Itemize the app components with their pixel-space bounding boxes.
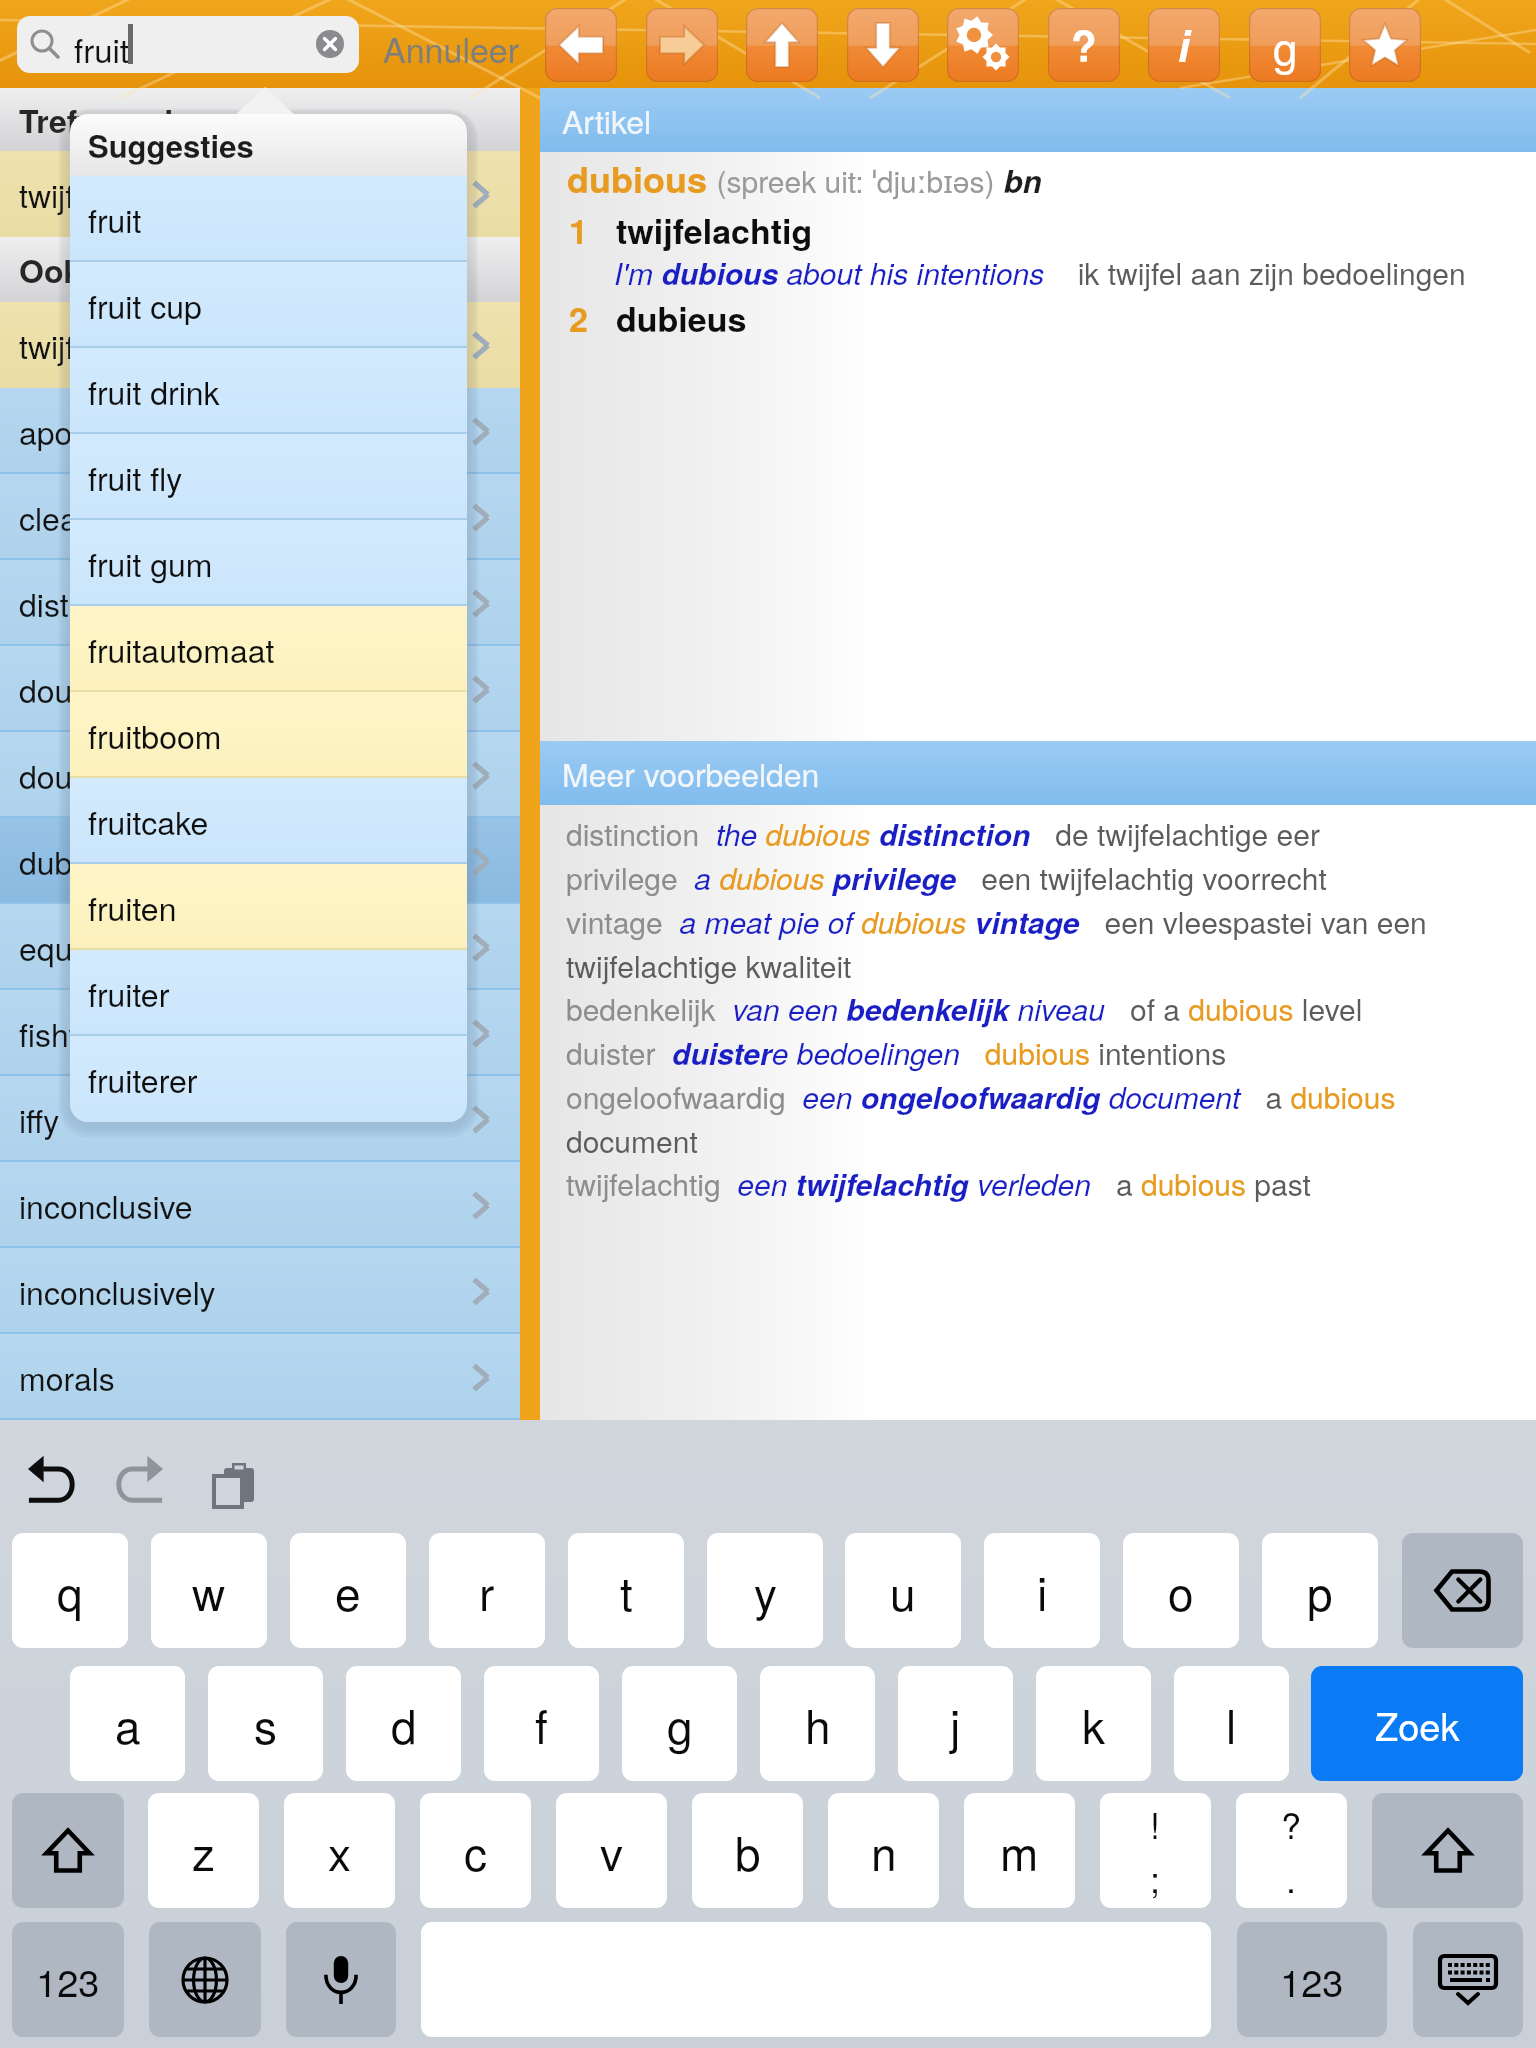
staticText: b — [735, 1818, 761, 1884]
button[interactable]: x — [284, 1793, 395, 1908]
button[interactable]: z — [148, 1793, 259, 1908]
button[interactable]: Backspace — [1402, 1533, 1523, 1648]
staticText: i — [1178, 15, 1190, 75]
button[interactable]: y — [707, 1533, 823, 1648]
button[interactable]: Hide keyboard — [1413, 1922, 1523, 2037]
button[interactable]: morals — [0, 1334, 520, 1420]
button[interactable]: back — [545, 8, 617, 82]
button[interactable]: o — [1123, 1533, 1239, 1648]
button[interactable]: Numbers — [1237, 1922, 1387, 2037]
button[interactable]: twijfelachtig — [0, 151, 520, 237]
button[interactable]: m — [964, 1793, 1075, 1908]
button[interactable]: fruit cup — [70, 262, 467, 348]
button[interactable]: i — [984, 1533, 1100, 1648]
button[interactable]: fruitautomaat — [70, 606, 467, 692]
button[interactable]: r — [429, 1533, 545, 1648]
button[interactable]: p — [1262, 1533, 1378, 1648]
button[interactable]: Shift — [1372, 1793, 1523, 1908]
staticText: p — [1307, 1558, 1333, 1624]
button[interactable]: ? — [1236, 1793, 1347, 1908]
button[interactable]: up — [746, 8, 818, 82]
button[interactable]: j — [898, 1666, 1013, 1781]
button[interactable]: g — [622, 1666, 737, 1781]
staticText: m — [1000, 1818, 1039, 1884]
button[interactable]: fruitcake — [70, 778, 467, 864]
button[interactable]: Change language — [149, 1922, 261, 2037]
button[interactable]: inconclusively — [0, 1248, 520, 1334]
button[interactable]: distrust — [0, 560, 520, 646]
button[interactable]: fruit gum — [70, 520, 467, 606]
button[interactable]: n — [828, 1793, 939, 1908]
button[interactable]: k — [1036, 1666, 1151, 1781]
button[interactable]: l — [1174, 1666, 1289, 1781]
button[interactable]: a — [70, 1666, 185, 1781]
button[interactable]: s — [208, 1666, 323, 1781]
staticText: t — [620, 1558, 633, 1624]
staticText: doubtful — [19, 752, 133, 798]
staticText: i — [1037, 1558, 1048, 1624]
button[interactable]: t — [568, 1533, 684, 1648]
button[interactable]: d — [346, 1666, 461, 1781]
staticText: apocryphal — [19, 408, 177, 454]
button[interactable]: inconclusive — [0, 1162, 520, 1248]
button[interactable]: apocryphal — [0, 388, 520, 474]
button[interactable]: doubt — [0, 646, 520, 732]
button[interactable]: fruit fly — [70, 434, 467, 520]
staticText: Suggesties — [88, 123, 254, 167]
staticText: Meer voorbeelden — [562, 750, 820, 796]
button[interactable]: w — [151, 1533, 267, 1648]
staticText: equivocal — [19, 924, 154, 970]
button[interactable]: iffy — [0, 1076, 520, 1162]
staticText: ? — [1281, 1798, 1302, 1850]
button[interactable]: help — [1048, 8, 1120, 82]
button[interactable]: info — [1148, 8, 1220, 82]
button[interactable]: doubtful — [0, 732, 520, 818]
button[interactable]: fruit drink — [70, 348, 467, 434]
button[interactable]: e — [290, 1533, 406, 1648]
button[interactable]: fishy — [0, 990, 520, 1076]
staticText: . — [1286, 1852, 1297, 1904]
button[interactable]: v — [556, 1793, 667, 1908]
staticText: iffy — [19, 1096, 60, 1142]
button[interactable]: f — [484, 1666, 599, 1781]
staticText: q — [57, 1558, 83, 1624]
button[interactable]: u — [845, 1533, 961, 1648]
button[interactable]: fruiterer — [70, 1036, 467, 1122]
button[interactable]: star — [1349, 8, 1421, 82]
button[interactable]: dubious — [0, 818, 520, 904]
button[interactable]: fruitboom — [70, 692, 467, 778]
button[interactable]: fruiter — [70, 950, 467, 1036]
staticText: fruit drink — [88, 368, 220, 414]
button[interactable]: fruit — [17, 16, 359, 73]
staticText: d — [391, 1691, 417, 1757]
button[interactable]: q — [12, 1533, 128, 1648]
staticText: twijfelachtig — [616, 206, 813, 255]
button[interactable]: equivocal — [0, 904, 520, 990]
button[interactable]: Annuleer — [383, 24, 520, 73]
button[interactable]: fruiten — [70, 864, 467, 950]
button[interactable]: fruit — [70, 176, 467, 262]
button[interactable]: c — [420, 1793, 531, 1908]
staticText: r — [479, 1558, 495, 1624]
button[interactable]: h — [760, 1666, 875, 1781]
button[interactable]: b — [692, 1793, 803, 1908]
button[interactable]: down — [847, 8, 919, 82]
button[interactable]: Dictate — [286, 1922, 396, 2037]
staticText: s — [254, 1691, 277, 1757]
button[interactable]: Numbers — [12, 1922, 124, 2037]
button[interactable]: Shift — [12, 1793, 124, 1908]
staticText: ; — [1150, 1852, 1161, 1904]
button[interactable]: clear — [0, 474, 520, 560]
button[interactable]: Zoek — [1311, 1666, 1523, 1781]
button[interactable]: twijfelachtig — [0, 302, 520, 388]
staticText: fruiter — [88, 970, 170, 1016]
staticText: distinction the dubious distinction de t… — [566, 812, 1320, 856]
staticText: ongeloofwaardig een ongeloofwaardig docu… — [566, 1075, 1504, 1162]
staticText: twijfelachtig een twijfelachtig verleden… — [566, 1162, 1311, 1206]
button[interactable]: Clear search text — [316, 30, 344, 58]
button[interactable]: google — [1249, 8, 1321, 82]
button[interactable]: ! — [1100, 1793, 1211, 1908]
button[interactable]: fwd — [646, 8, 718, 82]
button[interactable]: gear — [947, 8, 1019, 82]
